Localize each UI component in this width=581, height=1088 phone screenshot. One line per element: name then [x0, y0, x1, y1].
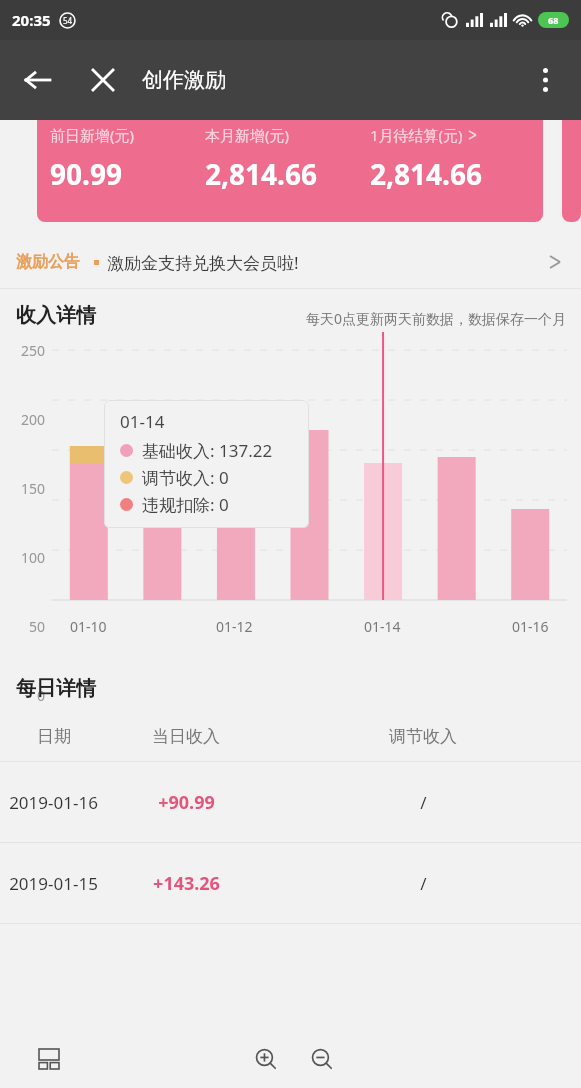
- staticText: /: [420, 872, 427, 895]
- staticText: 100: [21, 548, 46, 567]
- staticText: 收入详情: [16, 303, 96, 328]
- button[interactable]: Zoom in: [245, 1038, 287, 1080]
- staticText: 基础收入: 137.22: [142, 439, 273, 462]
- staticText: 01-16: [512, 617, 549, 636]
- staticText: /: [420, 791, 427, 814]
- staticText: 250: [21, 341, 46, 360]
- button[interactable]: 2019-01-15: [0, 843, 581, 923]
- staticText: 150: [21, 479, 46, 498]
- staticText: +143.26: [153, 871, 220, 896]
- button[interactable]: Zoom out: [301, 1038, 343, 1080]
- staticText: 创作激励: [142, 67, 226, 93]
- staticText: 1月待结算(元): [370, 125, 463, 145]
- staticText: 调节收入: [389, 726, 457, 747]
- staticText: 违规扣除: 0: [142, 493, 229, 516]
- button[interactable]: 2019-01-16: [0, 762, 581, 842]
- staticText: 90.99: [50, 155, 122, 193]
- staticText: 前日新增(元): [50, 125, 135, 145]
- staticText: 2019-01-16: [9, 791, 98, 814]
- staticText: 200: [21, 410, 46, 429]
- staticText: 当日收入: [152, 726, 220, 747]
- staticText: 每天0点更新两天前数据，数据保存一个月: [306, 309, 567, 328]
- staticText: 01-14: [120, 410, 165, 433]
- staticText: 本月新增(元): [205, 125, 290, 145]
- staticText: 01-14: [364, 617, 401, 636]
- staticText: 20:35: [12, 10, 51, 30]
- staticText: 68: [548, 14, 559, 26]
- staticText: 54: [63, 15, 73, 26]
- button[interactable]: 激励公告: [0, 236, 581, 288]
- button[interactable]: [562, 120, 581, 222]
- button[interactable]: Back: [14, 57, 60, 103]
- staticText: +90.99: [158, 790, 215, 815]
- button[interactable]: Close: [80, 57, 126, 103]
- staticText: 01-12: [216, 617, 253, 636]
- button[interactable]: 前日新增(元): [37, 120, 543, 222]
- staticText: 2019-01-15: [9, 872, 98, 895]
- staticText: 调节收入: 0: [142, 466, 229, 489]
- staticText: 每日详情: [16, 676, 96, 701]
- button[interactable]: Layout: [30, 1040, 68, 1078]
- staticText: 0: [37, 686, 46, 705]
- staticText: 激励公告: [16, 252, 80, 272]
- staticText: 50: [29, 617, 46, 636]
- staticText: 01-10: [70, 617, 107, 636]
- staticText: 日期: [37, 726, 71, 747]
- staticText: 2,814.66: [370, 155, 482, 193]
- staticText: 2,814.66: [205, 155, 317, 193]
- button[interactable]: More options: [519, 54, 571, 106]
- staticText: 激励金支持兑换大会员啦!: [107, 251, 299, 274]
